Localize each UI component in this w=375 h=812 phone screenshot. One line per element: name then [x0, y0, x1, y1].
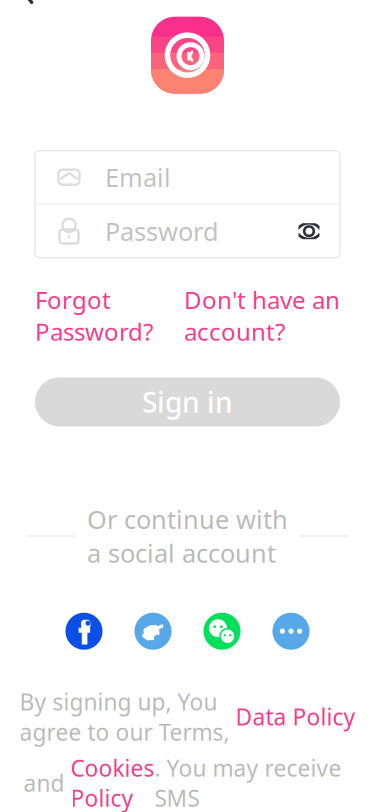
button[interactable]: Back — [6, 0, 50, 15]
button[interactable]: Continue with Twitter — [134, 613, 171, 650]
staticText: By signing up, You agree to our Terms, — [19, 687, 235, 747]
staticText: Sign in — [142, 383, 233, 420]
staticText: Don't have an account? — [184, 284, 340, 347]
button[interactable]: Cookies Policy — [70, 753, 154, 812]
button[interactable]: Forgot Password? — [35, 284, 153, 347]
staticText: Or continue with a social account — [87, 502, 288, 570]
staticText: . You may receive SMS — [154, 753, 341, 812]
button[interactable]: Continue with WeChat — [203, 613, 240, 650]
staticText: and — [23, 768, 70, 798]
button[interactable]: More sign in options — [272, 613, 309, 650]
button[interactable]: Continue with Facebook — [65, 613, 102, 650]
button[interactable]: Email — [35, 151, 340, 204]
button[interactable]: Sign in — [35, 377, 340, 426]
staticText: Cookies Policy — [70, 753, 154, 812]
button[interactable]: Data Policy — [235, 702, 355, 732]
button[interactable]: Don't have an account? — [184, 284, 340, 347]
staticText: Password — [105, 214, 219, 248]
staticText: Data Policy — [235, 702, 355, 732]
button[interactable]: Password — [35, 205, 340, 258]
staticText: Forgot Password? — [35, 284, 153, 347]
staticText: Email — [105, 160, 171, 194]
